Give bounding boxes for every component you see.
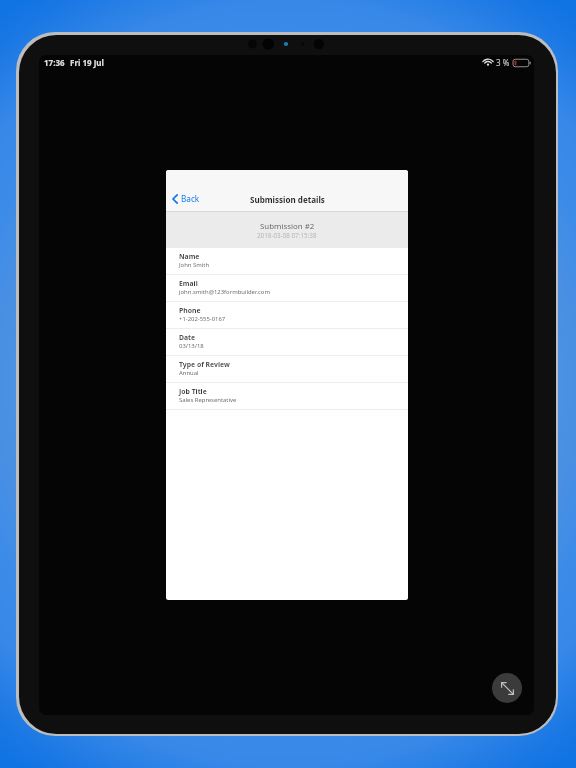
staticText: 03/13/18 [179, 342, 204, 350]
staticText: Email [179, 279, 198, 288]
staticText: Fri 19 Jul [70, 57, 104, 68]
staticText: Back [181, 193, 200, 204]
staticText: John Smith [179, 261, 210, 269]
staticText: 17:36 [44, 57, 65, 68]
staticText: Annual [179, 369, 199, 377]
button[interactable]: Phone [166, 302, 408, 328]
staticText: 3 % [496, 57, 510, 68]
staticText: Date [179, 333, 196, 342]
staticText: Type of Review [179, 360, 230, 369]
staticText: +1-202-555-0167 [179, 315, 226, 323]
button[interactable]: Back [169, 191, 203, 206]
button[interactable]: Name [166, 248, 408, 274]
staticText: john.smith@123formbuilder.com [179, 288, 270, 296]
staticText: Phone [179, 306, 201, 315]
button[interactable]: Job Title [166, 383, 408, 409]
staticText: Submission details [250, 194, 325, 205]
staticText: Name [179, 252, 200, 261]
button[interactable]: Expand to full screen [492, 673, 522, 703]
button[interactable]: Email [166, 275, 408, 301]
button[interactable]: Date [166, 329, 408, 355]
button[interactable]: Type of Review [166, 356, 408, 382]
staticText: Job Title [179, 387, 207, 396]
staticText: 2018-03-08 07:15:38 [257, 231, 317, 240]
staticText: Sales Representative [179, 396, 237, 404]
staticText: Submission #2 [260, 221, 315, 232]
